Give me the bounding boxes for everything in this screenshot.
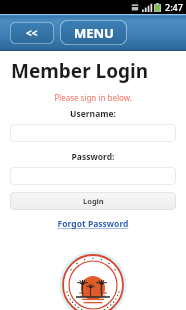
staticText: Login bbox=[83, 196, 104, 206]
staticText: MENU bbox=[74, 24, 114, 42]
staticText: << bbox=[26, 26, 38, 40]
button[interactable]: Back bbox=[10, 22, 54, 44]
staticText: Username: bbox=[0, 108, 186, 120]
staticText: Password: bbox=[0, 151, 186, 163]
button[interactable]: MENU bbox=[60, 20, 127, 45]
button[interactable]: Username input bbox=[10, 124, 176, 142]
staticText: 2:47 bbox=[165, 1, 183, 13]
button[interactable]: Login bbox=[10, 192, 176, 210]
staticText: Please sign in below. bbox=[0, 92, 186, 103]
button[interactable]: Forgot Password bbox=[0, 218, 186, 230]
button[interactable]: Password input bbox=[10, 167, 176, 185]
staticText: Member Login bbox=[11, 58, 149, 84]
